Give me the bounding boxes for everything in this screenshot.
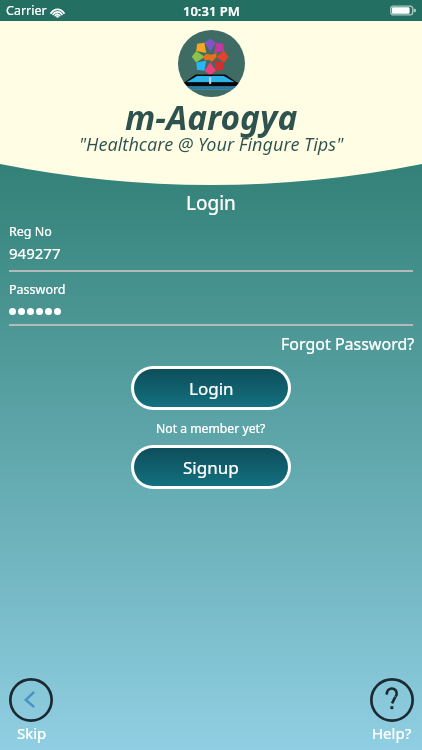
button[interactable]: Forgot Password? xyxy=(281,333,422,355)
staticText: Reg No xyxy=(9,223,52,240)
button[interactable]: Help xyxy=(370,678,414,743)
button[interactable]: Signup xyxy=(134,448,288,486)
staticText: Signup xyxy=(183,456,239,479)
staticText: Not a member yet? xyxy=(156,420,266,437)
button[interactable]: Skip xyxy=(9,678,53,743)
staticText: "Healthcare @ Your Fingure Tips" xyxy=(79,132,344,157)
staticText: Login xyxy=(186,190,236,216)
staticText: m-Aarogya xyxy=(125,94,298,140)
staticText: 10:31 PM xyxy=(183,2,240,20)
staticText: 949277 xyxy=(9,243,61,263)
other: Help xyxy=(370,678,414,722)
staticText: Help? xyxy=(372,723,412,743)
staticText: Login xyxy=(189,377,234,400)
other: Skip xyxy=(9,678,53,722)
staticText: Forgot Password? xyxy=(281,333,415,355)
button[interactable]: Login xyxy=(134,369,288,407)
staticText: Skip xyxy=(17,723,47,743)
staticText: Password xyxy=(9,281,66,298)
staticText: Carrier xyxy=(6,2,47,19)
